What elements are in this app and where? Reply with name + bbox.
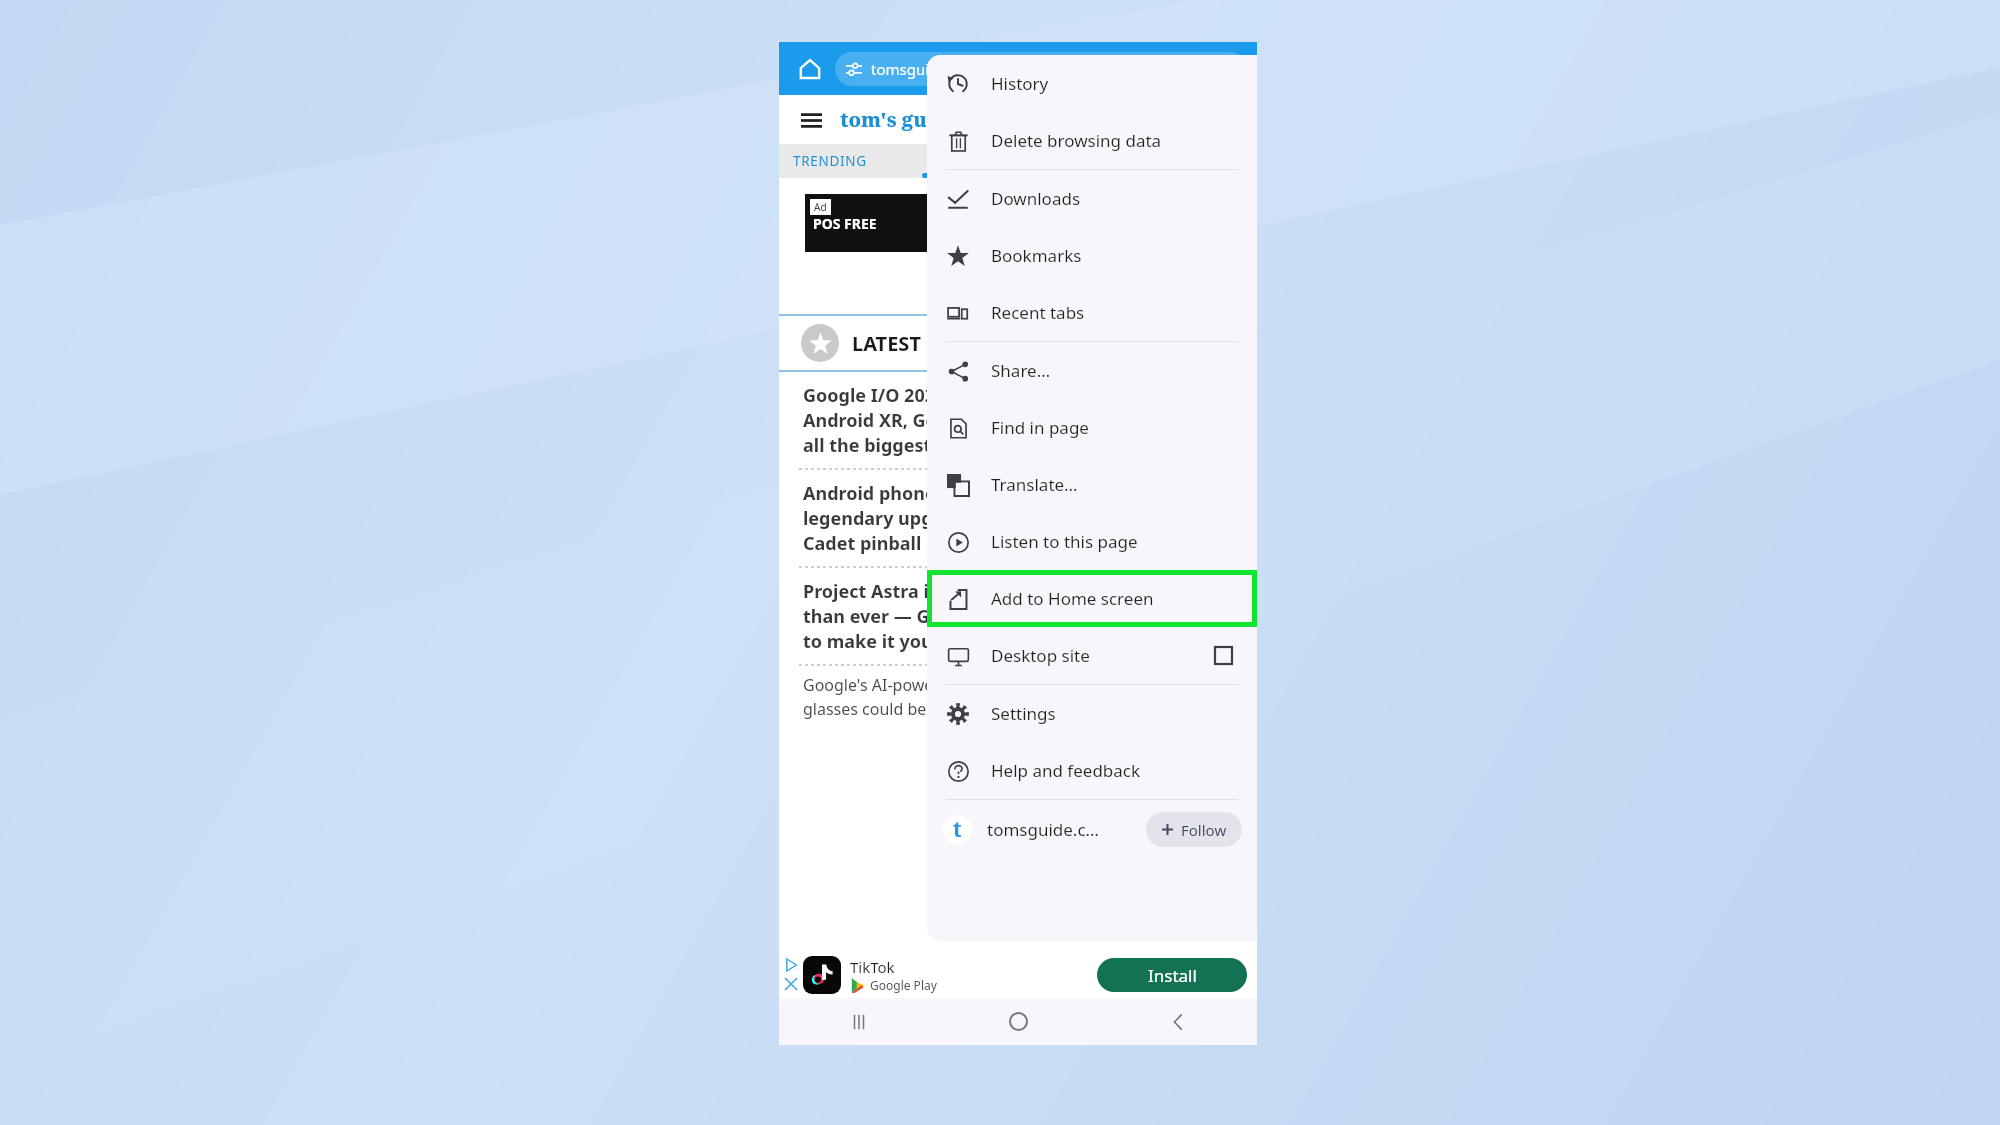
button[interactable]: Back <box>1098 998 1257 1045</box>
button[interactable]: Downloads <box>927 170 1257 227</box>
staticText: to make it yours <box>803 629 950 654</box>
staticText: Google's AI-powered smart glasses could … <box>803 674 1007 720</box>
staticText: Google I/O 2025: <box>803 383 951 408</box>
staticText: Bookmarks <box>991 244 1082 267</box>
staticText: Downloads <box>991 187 1081 210</box>
button[interactable]: Delete browsing data <box>927 112 1257 169</box>
staticText: legendary upgrade — <box>803 506 996 531</box>
button[interactable]: Settings <box>927 685 1257 742</box>
staticText: Google Play <box>870 977 937 993</box>
button[interactable]: Find in page <box>927 399 1257 456</box>
button[interactable]: tomsguide.com <box>835 52 1247 86</box>
staticText: Follow <box>1181 820 1227 840</box>
staticText: Listen to this page <box>991 530 1138 553</box>
staticText: Install <box>1148 964 1197 987</box>
staticText: t <box>953 815 962 844</box>
staticText: Delete browsing data <box>991 129 1162 152</box>
button[interactable]: Translate… <box>927 456 1257 513</box>
staticText: Ad <box>814 200 827 214</box>
staticText: than ever — Google wants <box>803 604 1039 629</box>
staticText: Add to Home screen <box>991 587 1154 610</box>
button[interactable]: t <box>943 800 1257 858</box>
button[interactable]: Home <box>939 998 1098 1045</box>
staticText: tom's guide <box>840 106 960 133</box>
staticText: Cadet pinball is back <box>803 531 988 556</box>
button[interactable]: Bookmarks <box>927 227 1257 284</box>
staticText: Share… <box>991 359 1051 382</box>
button[interactable]: Install <box>1097 958 1247 992</box>
button[interactable]: TRENDING <box>793 152 867 170</box>
staticText: Help and feedback <box>991 759 1141 782</box>
staticText: Find in page <box>991 416 1089 439</box>
button[interactable]: Add to Home screen <box>927 570 1257 627</box>
staticText: Settings <box>991 702 1056 725</box>
staticText: tomsguide.com <box>871 59 982 79</box>
button[interactable]: History <box>927 55 1257 112</box>
button[interactable]: Share… <box>927 342 1257 399</box>
staticText: TikTok <box>850 957 895 977</box>
staticText: tomsguide.c… <box>987 818 1100 841</box>
button[interactable]: Home <box>793 52 827 86</box>
button[interactable]: Desktop site <box>927 627 1257 684</box>
staticText: LATEST <box>852 330 921 357</box>
staticText: History <box>991 72 1049 95</box>
staticText: Recent tabs <box>991 301 1085 324</box>
staticText: Desktop site <box>991 644 1090 667</box>
staticText: POS FREE <box>813 214 877 233</box>
button[interactable]: Recent tabs <box>927 284 1257 341</box>
button[interactable]: Site menu <box>796 105 826 135</box>
staticText: Android XR, Gemini, <box>803 408 982 433</box>
staticText: all the biggest news <box>803 433 983 458</box>
staticText: Project Astra is smarter <box>803 579 1015 604</box>
staticText: Android phones get a <box>803 481 995 506</box>
button[interactable]: Listen to this page <box>927 513 1257 570</box>
button[interactable]: Help and feedback <box>927 742 1257 799</box>
button[interactable]: Recents <box>779 998 939 1045</box>
staticText: Translate… <box>991 473 1078 496</box>
button[interactable]: Follow <box>1146 812 1242 847</box>
